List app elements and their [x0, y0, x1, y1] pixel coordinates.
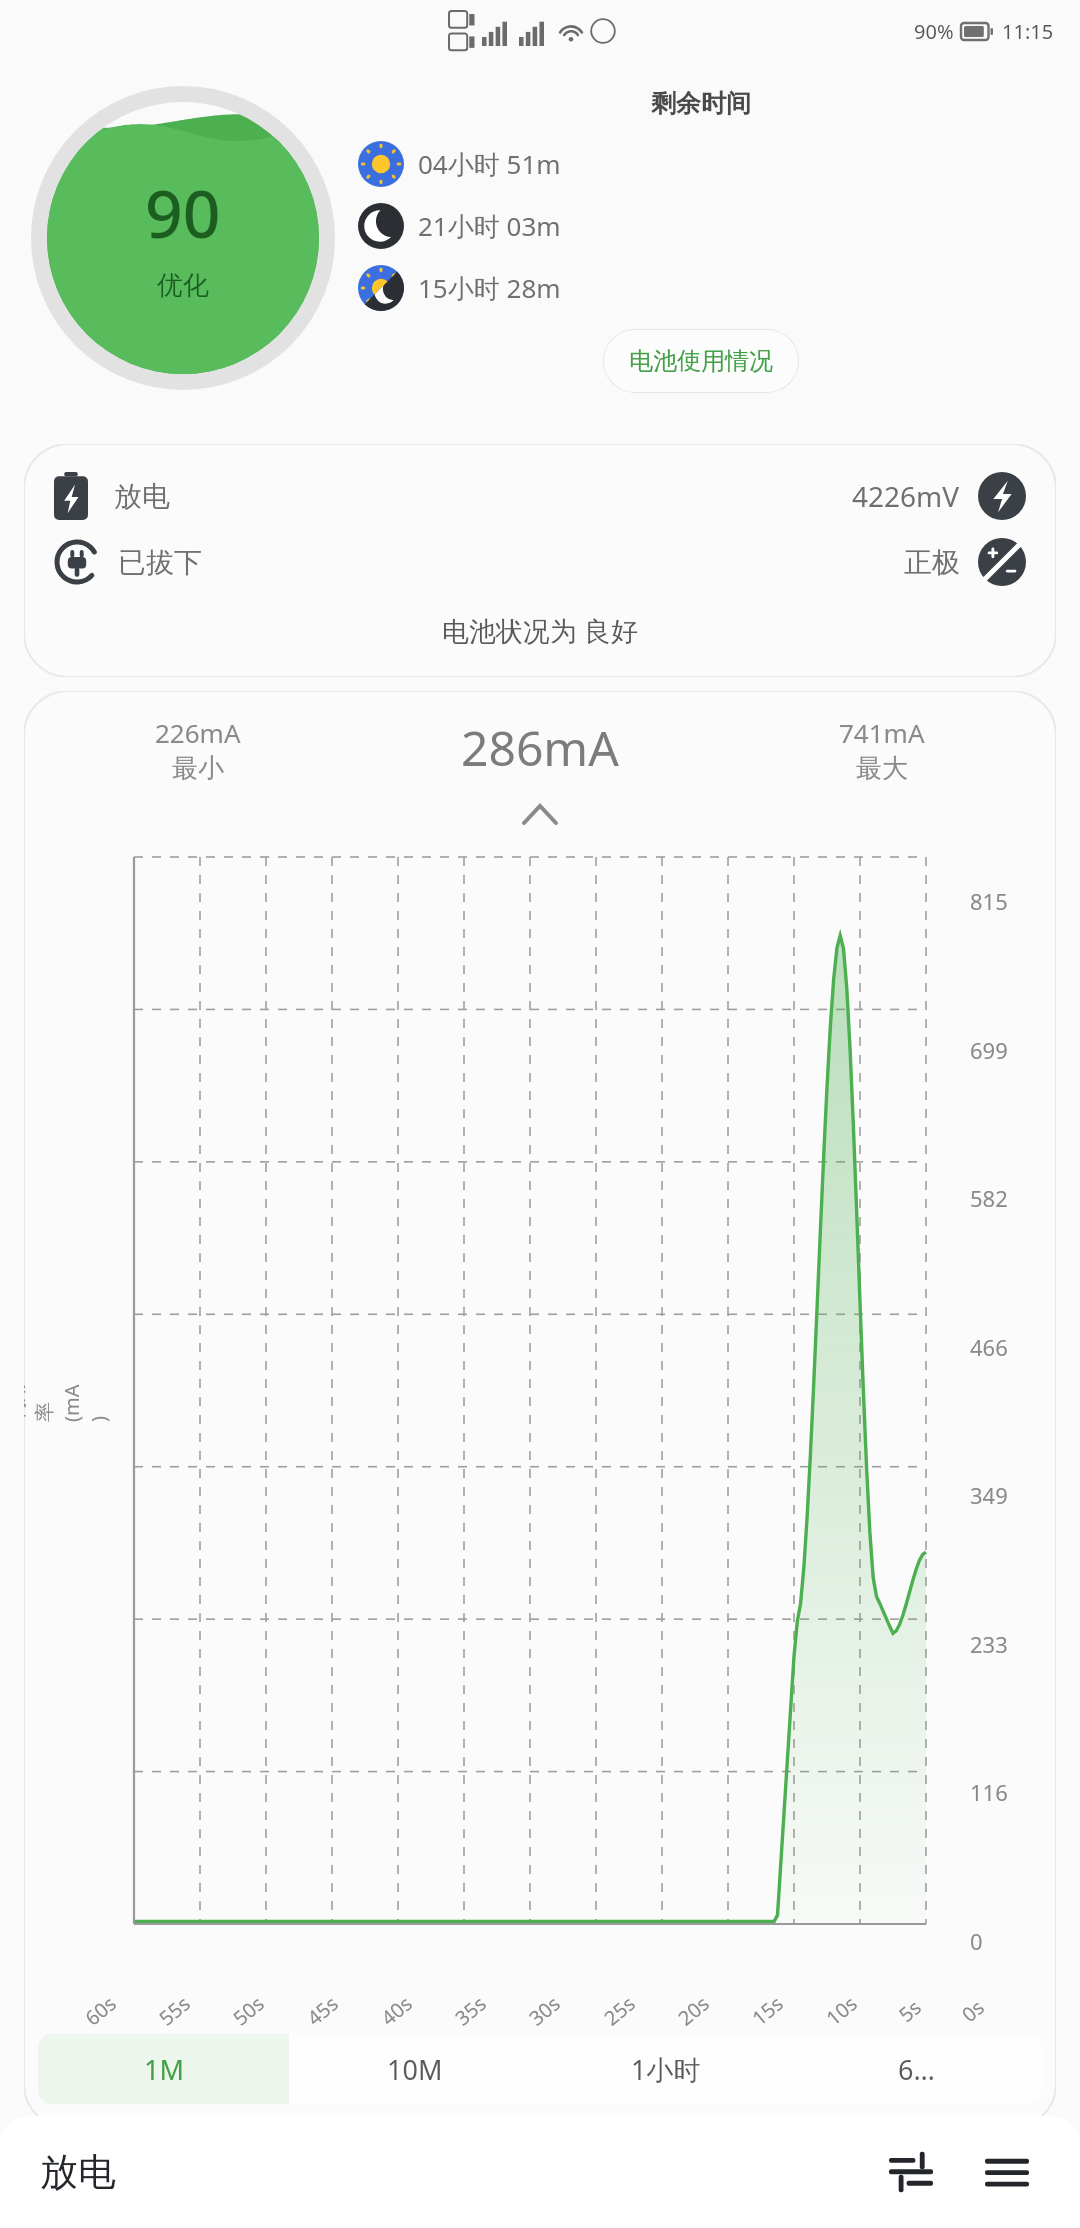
staticText: 电池状况为 良好 — [54, 612, 1026, 649]
staticText: 30s — [523, 1990, 566, 2031]
staticText: 116 — [970, 1777, 1008, 1807]
staticText: 最大 — [856, 752, 908, 785]
staticText: 286mA — [461, 715, 619, 780]
staticText: 90 — [145, 167, 221, 257]
staticText: 放电 — [114, 479, 170, 514]
staticText: 50s — [227, 1990, 270, 2031]
staticText: 5s — [893, 1993, 927, 2028]
staticText: 1小时 — [631, 2051, 701, 2088]
button[interactable]: 1M — [38, 2034, 289, 2104]
staticText: 20s — [672, 1990, 715, 2031]
button[interactable]: Settings — [878, 2139, 944, 2205]
staticText: 优化 — [157, 269, 209, 302]
staticText: 21小时 03m — [418, 208, 561, 244]
staticText: 90% — [914, 18, 954, 45]
staticText: 233 — [970, 1629, 1008, 1659]
staticText: 741mA — [839, 715, 925, 750]
staticText: 4226mV — [852, 477, 960, 515]
button[interactable]: 10M — [289, 2034, 540, 2104]
button[interactable]: 1小时 — [540, 2034, 791, 2104]
staticText: 6… — [898, 2051, 935, 2088]
staticText: 60s — [79, 1990, 122, 2031]
staticText: 55s — [153, 1990, 196, 2031]
staticText: 最小 — [172, 752, 224, 785]
staticText: 15s — [746, 1990, 789, 2031]
staticText: 剩余时间 — [651, 88, 751, 119]
staticText: 40s — [375, 1990, 418, 2031]
staticText: 35s — [449, 1990, 492, 2031]
button[interactable]: 电池使用情况 — [603, 329, 799, 393]
staticText: 815 — [970, 886, 1008, 916]
staticText: 0 — [970, 1926, 983, 1956]
button[interactable]: Menu — [974, 2139, 1040, 2205]
staticText: 226mA — [155, 715, 241, 750]
button[interactable]: 21小时 03m — [346, 203, 1056, 249]
staticText: 10M — [387, 2051, 443, 2088]
button[interactable]: 15小时 28m — [346, 265, 1056, 311]
staticText: 25s — [598, 1990, 641, 2031]
staticText: 11:15 — [1002, 18, 1054, 45]
staticText: 10s — [820, 1990, 863, 2031]
staticText: 04小时 51m — [418, 146, 561, 182]
staticText: 699 — [970, 1035, 1008, 1065]
staticText: 349 — [970, 1480, 1008, 1510]
button[interactable]: 04小时 51m — [346, 141, 1056, 187]
button[interactable]: 6… — [791, 2034, 1042, 2104]
staticText: 45s — [301, 1990, 344, 2031]
staticText: 正极 — [904, 545, 960, 580]
button[interactable]: 放电 — [24, 444, 1056, 677]
staticText: 1M — [144, 2051, 184, 2088]
staticText: 582 — [970, 1183, 1008, 1213]
staticText: 0s — [956, 1993, 990, 2028]
staticText: 利用率 (mA) — [24, 1382, 112, 1422]
button[interactable]: Collapse — [38, 797, 1042, 831]
staticText: 466 — [970, 1332, 1008, 1362]
staticText: 电池使用情况 — [629, 346, 773, 376]
staticText: 已拔下 — [118, 545, 202, 580]
staticText: 放电 — [40, 2148, 116, 2196]
staticText: 15小时 28m — [418, 270, 561, 306]
